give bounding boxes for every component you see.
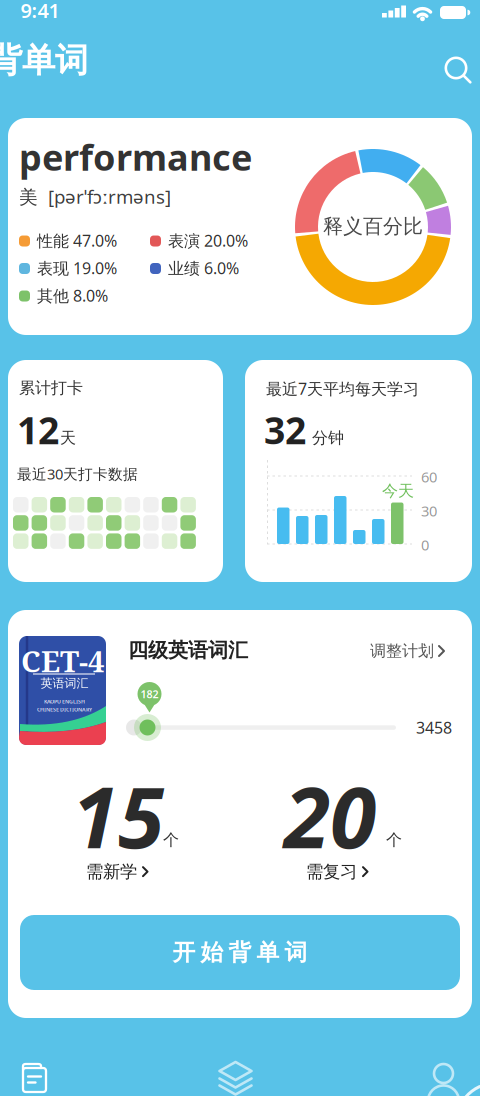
staticText: 最近30天打卡数据 [17,464,138,483]
button[interactable]: 开始背单词 [20,915,460,990]
staticText: CHINESE DICTIONARY [37,706,92,713]
staticText: 调整计划 [370,641,434,661]
staticText: 0 [421,535,429,554]
staticText: 182 [140,687,158,701]
staticText: 累计打卡 [19,378,83,398]
button[interactable]: 需新学 [86,861,149,882]
staticText: 性能 47.0% [37,230,117,251]
staticText: 20 [284,760,376,871]
staticText: 9:41 [20,0,59,24]
staticText: 3458 [416,717,452,738]
staticText: 背单词 [0,40,88,81]
staticText: 美 [pərˈfɔːrməns] [19,184,171,209]
staticText: 32 [264,405,306,455]
staticText: 开始背单词 [172,939,307,966]
staticText: 四级英语词汇 [128,638,248,663]
staticText: 业绩 6.0% [168,257,239,279]
staticText: 今天 [382,481,414,501]
staticText: 15 [72,760,164,871]
button[interactable]: 词书 [6,1052,62,1096]
staticText: 12 [17,405,59,455]
staticText: performance [19,133,252,181]
button[interactable]: 需复习 [306,861,369,882]
staticText: CET-4 [21,641,105,681]
button[interactable]: 搜索 [436,48,480,92]
staticText: 分钟 [312,428,344,448]
button[interactable]: 调整计划 [370,641,446,661]
staticText: 英语词汇 [40,676,88,691]
button[interactable]: 背单词 [207,1052,263,1096]
staticText: 个 [163,830,179,850]
staticText: 表演 20.0% [168,230,248,251]
staticText: 需新学 [86,861,137,882]
staticText: 天 [60,428,76,448]
staticText: 其他 8.0% [37,285,108,306]
staticText: 个 [386,830,402,850]
staticText: 需复习 [306,861,357,882]
staticText: 释义百分比 [323,214,423,239]
staticText: 最近7天平均每天学习 [266,378,419,399]
staticText: KAOPU ENGLISH [44,698,85,705]
staticText: 30 [421,501,437,520]
button[interactable]: 我的 [415,1052,471,1096]
staticText: 60 [421,467,437,486]
staticText: 表现 19.0% [37,257,117,279]
